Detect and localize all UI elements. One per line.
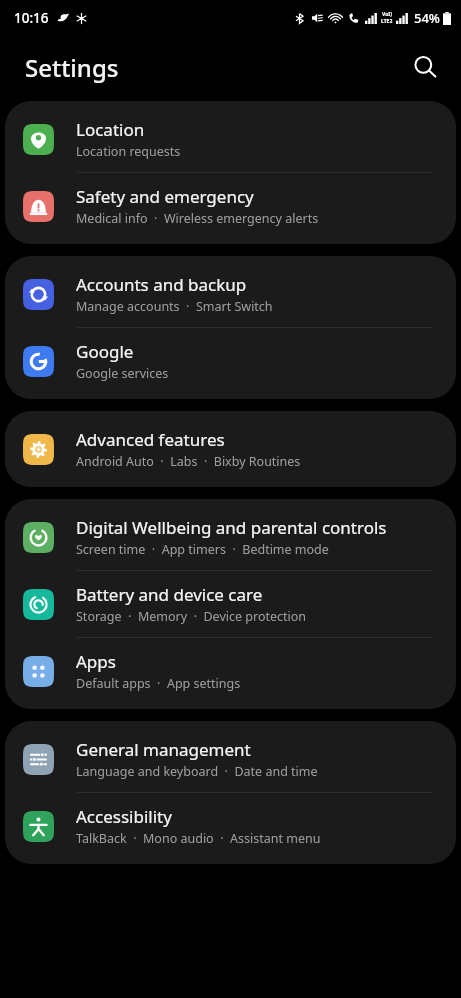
button[interactable]: Advanced features <box>5 416 456 482</box>
staticText: VoI) <box>382 11 392 18</box>
other: Accounts and backup <box>23 279 54 310</box>
staticText: Accessibility <box>76 805 172 828</box>
staticText: Accounts and backup <box>76 273 247 296</box>
button[interactable]: Google <box>5 328 456 394</box>
button[interactable]: Digital Wellbeing <box>5 504 456 571</box>
button[interactable]: Accessibility <box>5 793 456 859</box>
button[interactable]: General management <box>5 726 456 793</box>
staticText: Settings <box>25 51 119 84</box>
staticText: Advanced features <box>76 428 225 451</box>
staticText: Medical info · Wireless emergency alerts <box>76 210 319 227</box>
staticText: 10:16 <box>14 9 49 27</box>
staticText: Manage accounts · Smart Switch <box>76 298 273 315</box>
staticText: Google <box>76 340 134 363</box>
staticText: Google services <box>76 365 169 382</box>
other: Safety and emergency <box>23 191 54 222</box>
staticText: General management <box>76 738 251 761</box>
other: Accessibility <box>23 811 54 842</box>
staticText: Location <box>76 118 145 141</box>
staticText: Location requests <box>76 143 181 160</box>
button[interactable]: Search <box>405 47 445 87</box>
staticText: Screen time · App timers · Bedtime mode <box>76 541 329 558</box>
button[interactable]: Location <box>5 106 456 173</box>
button[interactable]: Safety and emergency <box>5 173 456 239</box>
other: Location <box>23 124 54 155</box>
staticText: Default apps · App settings <box>76 675 241 692</box>
staticText: Battery and device care <box>76 583 263 606</box>
staticText: Language and keyboard · Date and time <box>76 763 318 780</box>
other: Battery and device care <box>23 589 54 620</box>
staticText: Android Auto · Labs · Bixby Routines <box>76 453 301 470</box>
button[interactable]: Accounts and backup <box>5 261 456 328</box>
staticText: 54% <box>414 9 440 27</box>
other: Digital Wellbeing <box>23 522 54 553</box>
staticText: LTE2 <box>381 18 393 25</box>
other: Apps <box>23 656 54 687</box>
staticText: Storage · Memory · Device protection <box>76 608 307 625</box>
button[interactable]: Apps <box>5 638 456 704</box>
other: General management <box>23 744 54 775</box>
other: Advanced features <box>23 434 54 465</box>
staticText: TalkBack · Mono audio · Assistant menu <box>76 830 321 847</box>
staticText: Safety and emergency <box>76 185 254 208</box>
staticText: Digital Wellbeing and parental controls <box>76 516 387 539</box>
other: Google <box>23 346 54 377</box>
staticText: Apps <box>76 650 116 673</box>
button[interactable]: Battery and device care <box>5 571 456 638</box>
